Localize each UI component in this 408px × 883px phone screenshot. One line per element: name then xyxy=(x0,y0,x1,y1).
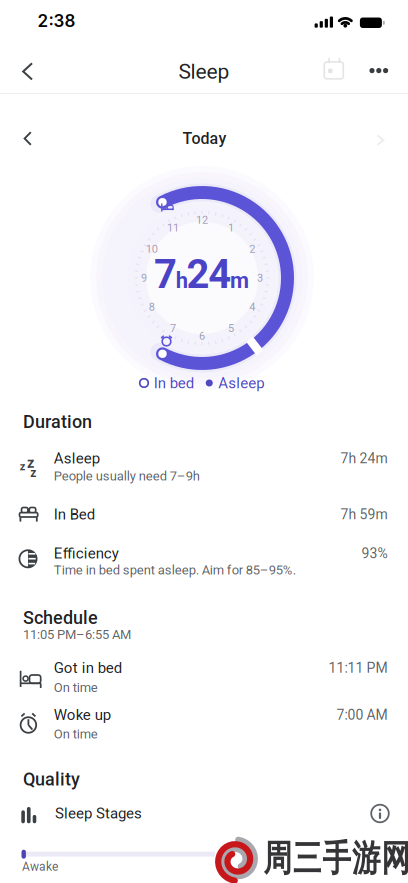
staticText: 93% xyxy=(361,545,387,562)
staticText: People usually need 7–9h xyxy=(54,468,200,484)
staticText: On time xyxy=(54,680,98,695)
button[interactable] xyxy=(319,55,349,85)
staticText: 2:38 xyxy=(37,10,75,31)
button[interactable] xyxy=(364,56,394,86)
staticText: 11 xyxy=(167,221,179,234)
staticText: Asleep xyxy=(218,374,264,392)
button[interactable] xyxy=(6,49,50,93)
staticText: Sleep Stages xyxy=(55,804,142,822)
staticText: 1 xyxy=(228,221,234,234)
staticText: Efficiency xyxy=(54,544,119,562)
staticText: 11:11 PM xyxy=(328,660,387,676)
staticText: Duration xyxy=(23,411,92,432)
staticText: 6 xyxy=(199,330,205,342)
staticText: In Bed xyxy=(54,505,95,523)
staticText: 8 xyxy=(149,301,155,313)
staticText: 10 xyxy=(146,243,158,255)
staticText: Schedule xyxy=(23,607,98,628)
staticText: 9 xyxy=(141,272,147,284)
button[interactable] xyxy=(8,118,48,158)
staticText: 7h24m xyxy=(154,251,249,297)
staticText: 12 xyxy=(196,214,208,226)
staticText: On time xyxy=(54,726,98,742)
staticText: 周三手游网 xyxy=(263,840,408,876)
staticText: 2 xyxy=(249,243,255,255)
staticText: Time in bed spent asleep. Aim for 85–95%… xyxy=(54,562,296,578)
staticText: Sleep xyxy=(178,59,229,84)
staticText: 3 xyxy=(257,272,263,284)
staticText: 7 xyxy=(170,322,176,335)
staticText: Asleep xyxy=(54,449,100,467)
staticText: 7h 59m xyxy=(340,506,387,523)
staticText: z xyxy=(30,466,36,480)
staticText: 7:00 AM xyxy=(336,707,387,723)
staticText: Got in bed xyxy=(54,659,122,677)
staticText: Quality xyxy=(23,769,80,790)
staticText: Today xyxy=(182,129,226,148)
button[interactable]: Sleep Stages xyxy=(0,792,408,836)
staticText: 11:05 PM–6:55 AM xyxy=(23,627,131,642)
staticText: 7h 24m xyxy=(340,450,387,467)
staticText: 4 xyxy=(249,301,255,313)
staticText: 5 xyxy=(228,322,234,335)
staticText: z xyxy=(20,460,26,473)
staticText: Awake xyxy=(22,860,58,874)
staticText: Woke up xyxy=(54,706,111,724)
button[interactable] xyxy=(367,800,393,826)
staticText: In bed xyxy=(154,374,194,392)
staticText: z xyxy=(27,454,34,471)
